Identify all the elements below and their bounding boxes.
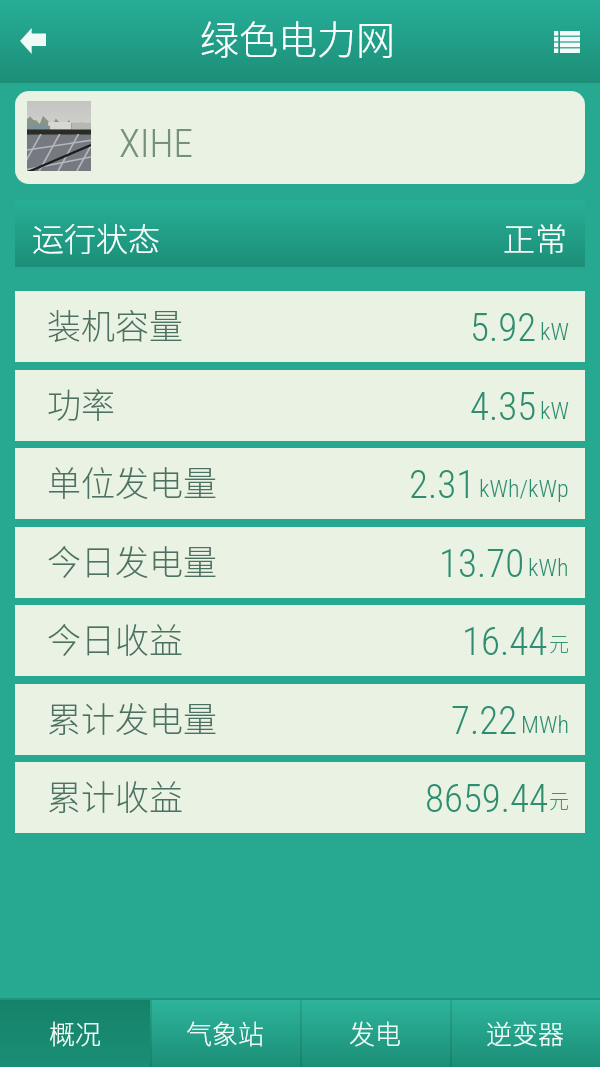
staticText: kW — [540, 318, 569, 346]
button[interactable]: 功率 — [15, 370, 585, 441]
staticText: 累计收益 — [47, 771, 183, 820]
staticText: 概况 — [49, 1014, 102, 1052]
staticText: MWh — [521, 711, 569, 739]
button[interactable]: 今日发电量 — [15, 527, 585, 598]
staticText: 13.70 — [439, 541, 525, 587]
button[interactable]: 装机容量 — [15, 291, 585, 362]
button[interactable]: 运行状态 — [15, 200, 585, 267]
staticText: 今日发电量 — [47, 536, 217, 585]
button[interactable]: XIHE — [15, 91, 585, 184]
button[interactable]: 今日收益 — [15, 605, 585, 676]
staticText: 5.92 — [470, 305, 537, 351]
staticText: 绿色电力网 — [200, 9, 396, 65]
button[interactable]: 发电 — [300, 1000, 450, 1067]
staticText: 累计发电量 — [47, 693, 217, 742]
staticText: 正常 — [503, 214, 568, 260]
button[interactable]: 气象站 — [150, 1000, 300, 1067]
staticText: 今日收益 — [47, 614, 183, 663]
staticText: XIHE — [119, 121, 193, 167]
staticText: 发电 — [349, 1014, 402, 1052]
staticText: 7.22 — [451, 698, 518, 744]
staticText: 功率 — [47, 379, 115, 428]
staticText: 16.44 — [462, 619, 548, 665]
staticText: 气象站 — [186, 1014, 265, 1052]
staticText: 8659.44 — [425, 776, 548, 822]
button[interactable]: Menu — [537, 9, 597, 75]
button[interactable]: 概况 — [0, 1000, 150, 1067]
staticText: 4.35 — [470, 384, 537, 430]
staticText: 装机容量 — [47, 300, 183, 349]
staticText: 单位发电量 — [47, 457, 217, 506]
button[interactable]: 单位发电量 — [15, 448, 585, 519]
staticText: 逆变器 — [486, 1014, 565, 1052]
button[interactable]: 累计发电量 — [15, 684, 585, 755]
staticText: 运行状态 — [32, 214, 161, 260]
button[interactable]: Back — [0, 9, 66, 75]
staticText: 2.31 — [409, 462, 476, 508]
staticText: 元 — [549, 629, 569, 658]
staticText: kWh/kWp — [479, 475, 569, 503]
button[interactable]: 逆变器 — [450, 1000, 600, 1067]
button[interactable]: 累计收益 — [15, 762, 585, 833]
staticText: kW — [540, 397, 569, 425]
staticText: 元 — [549, 786, 569, 815]
staticText: kWh — [528, 554, 569, 582]
